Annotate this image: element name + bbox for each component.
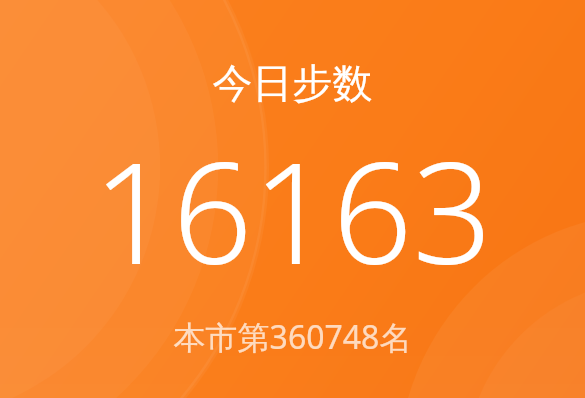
button[interactable]: 今日步数 16163 本市第360748名: [0, 0, 585, 398]
staticText: 本市第360748名: [0, 315, 585, 359]
staticText: 16163: [0, 114, 585, 305]
staticText: 今日步数: [0, 58, 585, 108]
